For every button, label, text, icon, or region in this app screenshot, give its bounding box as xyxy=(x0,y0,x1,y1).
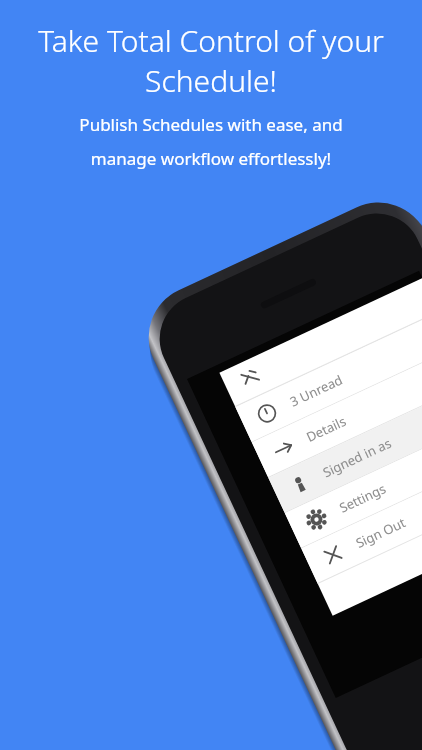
staticText: Details xyxy=(303,412,349,446)
staticText: Sign Out xyxy=(353,513,408,552)
staticText: Take Total Control of your Schedule! xyxy=(14,20,408,101)
staticText: 3 Unread xyxy=(287,370,346,411)
button[interactable]: Shifts xyxy=(219,269,422,407)
button[interactable]: 3 Unread xyxy=(235,303,422,442)
button[interactable]: Signed in as xyxy=(268,374,422,512)
button[interactable]: Settings xyxy=(285,409,422,548)
button[interactable]: Sign Out xyxy=(301,445,422,583)
staticText: Settings xyxy=(336,479,389,517)
button[interactable]: Details xyxy=(252,339,422,477)
staticText: Signed in as xyxy=(320,434,394,481)
staticText: Publish Schedules with ease, and manage … xyxy=(14,113,408,170)
